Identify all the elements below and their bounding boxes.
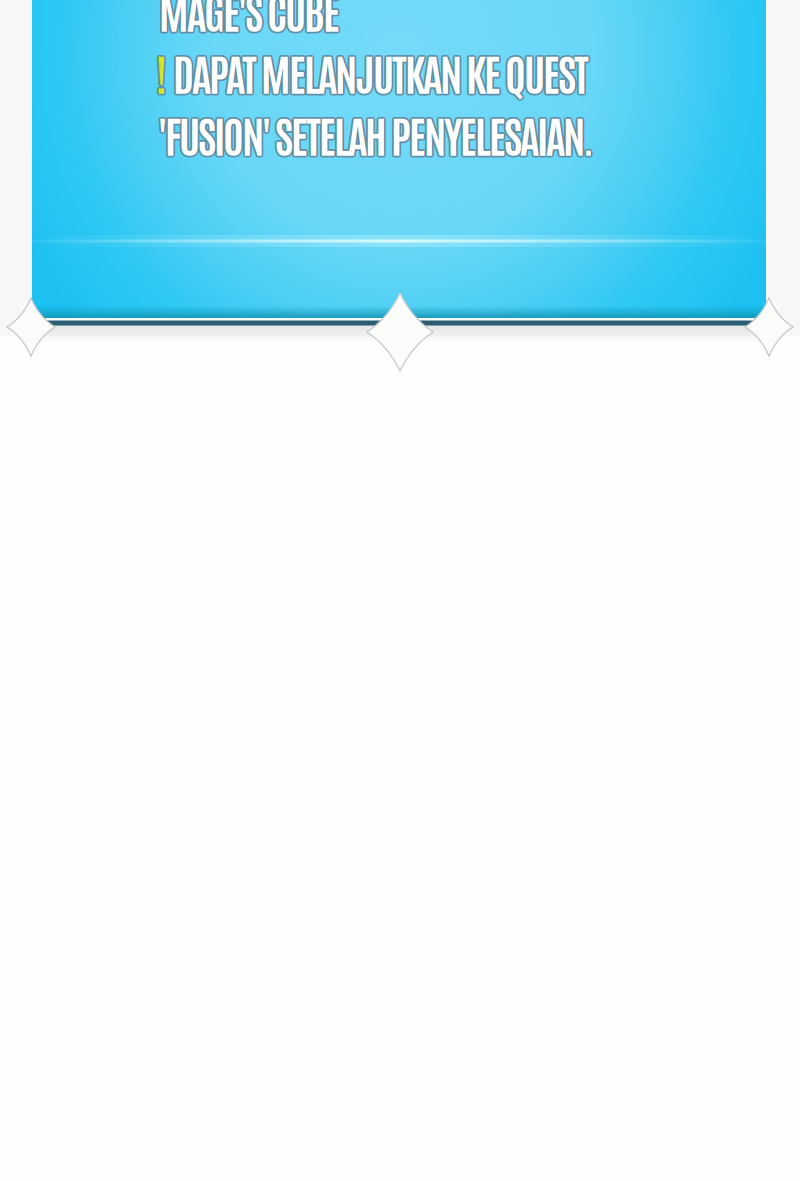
staticText: MAGE'S CUBE bbox=[159, 0, 340, 36]
staticText: ! bbox=[158, 44, 169, 100]
staticText: MAGE'S CUBE bbox=[157, 0, 338, 38]
staticText: 'FUSION' SETELAH PENYELESAIAN. bbox=[159, 105, 595, 160]
staticText: ! bbox=[157, 43, 168, 98]
staticText: 'FUSION' SETELAH PENYELESAIAN. bbox=[156, 106, 592, 162]
staticText: DAPAT MELANJUTKAN KE QUEST bbox=[174, 46, 590, 101]
staticText: DAPAT MELANJUTKAN KE QUEST bbox=[173, 43, 589, 98]
staticText: MAGE'S CUBE bbox=[159, 0, 340, 39]
staticText: DAPAT MELANJUTKAN KE QUEST bbox=[172, 43, 588, 98]
staticText: ! bbox=[155, 46, 166, 101]
staticText: 'FUSION' SETELAH PENYELESAIAN. bbox=[160, 106, 596, 162]
staticText: DAPAT MELANJUTKAN KE QUEST bbox=[174, 43, 590, 98]
staticText: 'FUSION' SETELAH PENYELESAIAN. bbox=[159, 108, 595, 163]
staticText: ! bbox=[154, 44, 165, 100]
staticText: ! bbox=[156, 43, 167, 98]
staticText: MAGE'S CUBE bbox=[158, 0, 339, 39]
staticText: 'FUSION' SETELAH PENYELESAIAN. bbox=[158, 108, 594, 163]
staticText: DAPAT MELANJUTKAN KE QUEST bbox=[173, 44, 589, 100]
staticText: MAGE'S CUBE bbox=[161, 0, 342, 38]
staticText: MAGE'S CUBE bbox=[159, 0, 340, 38]
staticText: 'FUSION' SETELAH PENYELESAIAN. bbox=[158, 105, 594, 160]
staticText: DAPAT MELANJUTKAN KE QUEST bbox=[172, 46, 588, 101]
staticText: ! bbox=[156, 46, 167, 101]
staticText: DAPAT MELANJUTKAN KE QUEST bbox=[173, 46, 589, 101]
staticText: ! bbox=[157, 46, 168, 101]
staticText: 'FUSION' SETELAH PENYELESAIAN. bbox=[157, 105, 593, 160]
staticText: ! bbox=[156, 44, 167, 100]
staticText: DAPAT MELANJUTKAN KE QUEST bbox=[175, 44, 591, 100]
staticText: 'FUSION' SETELAH PENYELESAIAN. bbox=[157, 108, 593, 163]
staticText: ! bbox=[155, 43, 166, 98]
staticText: MAGE'S CUBE bbox=[158, 0, 339, 36]
staticText: 'FUSION' SETELAH PENYELESAIAN. bbox=[158, 106, 594, 162]
staticText: MAGE'S CUBE bbox=[160, 0, 341, 39]
staticText: DAPAT MELANJUTKAN KE QUEST bbox=[171, 44, 587, 100]
staticText: MAGE'S CUBE bbox=[160, 0, 341, 36]
